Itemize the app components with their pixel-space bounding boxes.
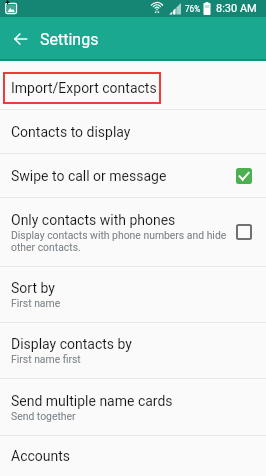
button[interactable]: Sort by <box>0 267 266 322</box>
button[interactable]: Import/Export contacts <box>0 67 266 109</box>
staticText: Swipe to call or message <box>11 168 167 184</box>
staticText: Display contacts by <box>11 336 132 352</box>
button[interactable]: Accounts <box>0 436 266 476</box>
staticText: First name first <box>11 353 81 365</box>
staticText: Send together <box>11 410 76 422</box>
button[interactable]: Swipe to call or message <box>0 154 266 197</box>
staticText: 76% <box>185 4 201 14</box>
staticText: Only contacts with phones <box>11 212 176 228</box>
staticText: Display contacts with phone numbers and … <box>11 229 230 253</box>
staticText: Send multiple name cards <box>11 393 173 409</box>
button[interactable]: Back <box>0 17 40 61</box>
staticText: Settings <box>40 30 99 49</box>
button[interactable]: Send multiple name cards <box>0 379 266 435</box>
button[interactable]: Display contacts by <box>0 323 266 378</box>
staticText: Accounts <box>11 448 71 464</box>
staticText: Import/Export contacts <box>11 80 157 96</box>
button[interactable]: Only contacts with phones <box>0 198 266 266</box>
staticText: 8:30 AM <box>216 2 257 15</box>
staticText: Contacts to display <box>11 124 131 140</box>
staticText: First name <box>11 297 61 309</box>
staticText: Sort by <box>11 280 55 296</box>
button[interactable]: Contacts to display <box>0 110 266 153</box>
